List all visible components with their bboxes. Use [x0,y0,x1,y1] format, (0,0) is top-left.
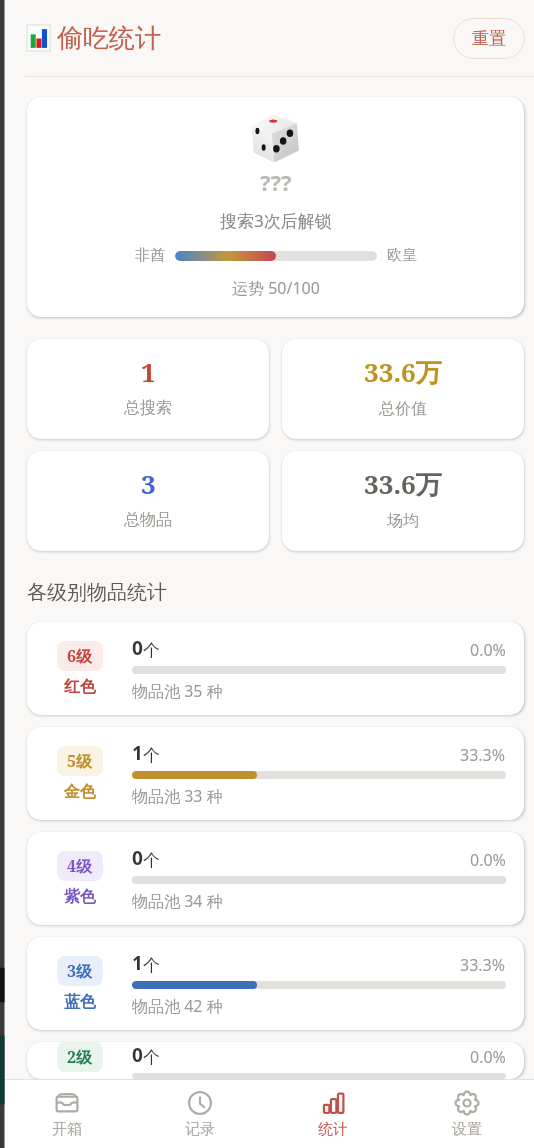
staticText: 欧皇 [387,246,417,265]
staticText: 个 [143,850,160,871]
staticText: 开箱 [52,1120,82,1139]
staticText: 各级别物品统计 [27,580,167,605]
other: 设置 [454,1090,480,1116]
staticText: 0.0% [470,639,506,661]
staticText: 紫色 [64,887,96,907]
staticText: 运势 50/100 [232,277,320,299]
staticText: 设置 [452,1120,482,1139]
staticText: 个 [143,1047,160,1068]
button[interactable]: 1 [27,339,269,439]
staticText: 物品池 35 种 [132,680,223,702]
staticText: 重置 [472,28,506,49]
staticText: 33.6万 [364,466,442,502]
staticText: 3级 [67,960,93,982]
button[interactable]: 开箱 [0,1080,133,1148]
button[interactable]: 6级 [27,622,524,715]
staticText: 偷吃统计 [57,22,161,55]
staticText: 5级 [67,750,93,772]
staticText: 3 [141,466,156,501]
staticText: ??? [260,167,292,197]
button[interactable]: 统计 [266,1080,400,1148]
staticText: 0 [132,1042,143,1068]
staticText: 场均 [387,511,419,531]
button[interactable]: 设置 [400,1080,534,1148]
staticText: 0 [132,845,143,871]
other: 记录 [187,1090,213,1116]
staticText: 非酋 [135,246,165,265]
button[interactable]: 33.6万 [282,339,524,439]
staticText: 个 [143,640,160,661]
button[interactable]: 重置 [453,18,525,59]
staticText: 物品池 34 种 [132,890,223,912]
staticText: 总物品 [124,510,172,530]
staticText: 记录 [185,1120,215,1139]
staticText: 33.3% [460,744,506,766]
staticText: 个 [143,745,160,766]
other: 开箱 [54,1090,80,1116]
staticText: 4级 [67,855,93,877]
staticText: 蓝色 [64,992,96,1012]
staticText: 33.3% [460,954,506,976]
button[interactable]: 5级 [27,727,524,820]
staticText: 个 [143,955,160,976]
staticText: 0 [132,635,143,661]
other: 统计 [320,1090,346,1116]
button[interactable]: 2级 [27,1042,524,1079]
staticText: 1 [132,950,143,976]
button[interactable]: 33.6万 [282,451,524,551]
staticText: 0.0% [470,849,506,871]
staticText: 金色 [64,782,96,802]
staticText: 1 [132,740,143,766]
staticText: 33.6万 [364,354,442,390]
staticText: 总搜索 [124,398,172,418]
staticText: 6级 [67,645,93,667]
button[interactable]: 记录 [133,1080,266,1148]
staticText: 物品池 42 种 [132,995,223,1017]
staticText: 2级 [67,1046,93,1068]
staticText: 1 [141,354,156,389]
button[interactable]: 3 [27,451,269,551]
button[interactable]: 3级 [27,937,524,1030]
button[interactable]: 4级 [27,832,524,925]
staticText: 搜索3次后解锁 [220,209,332,232]
staticText: 0.0% [470,1046,506,1068]
staticText: 统计 [318,1120,348,1139]
staticText: 物品池 33 种 [132,785,223,807]
staticText: 总价值 [379,399,427,419]
staticText: 红色 [64,677,96,697]
